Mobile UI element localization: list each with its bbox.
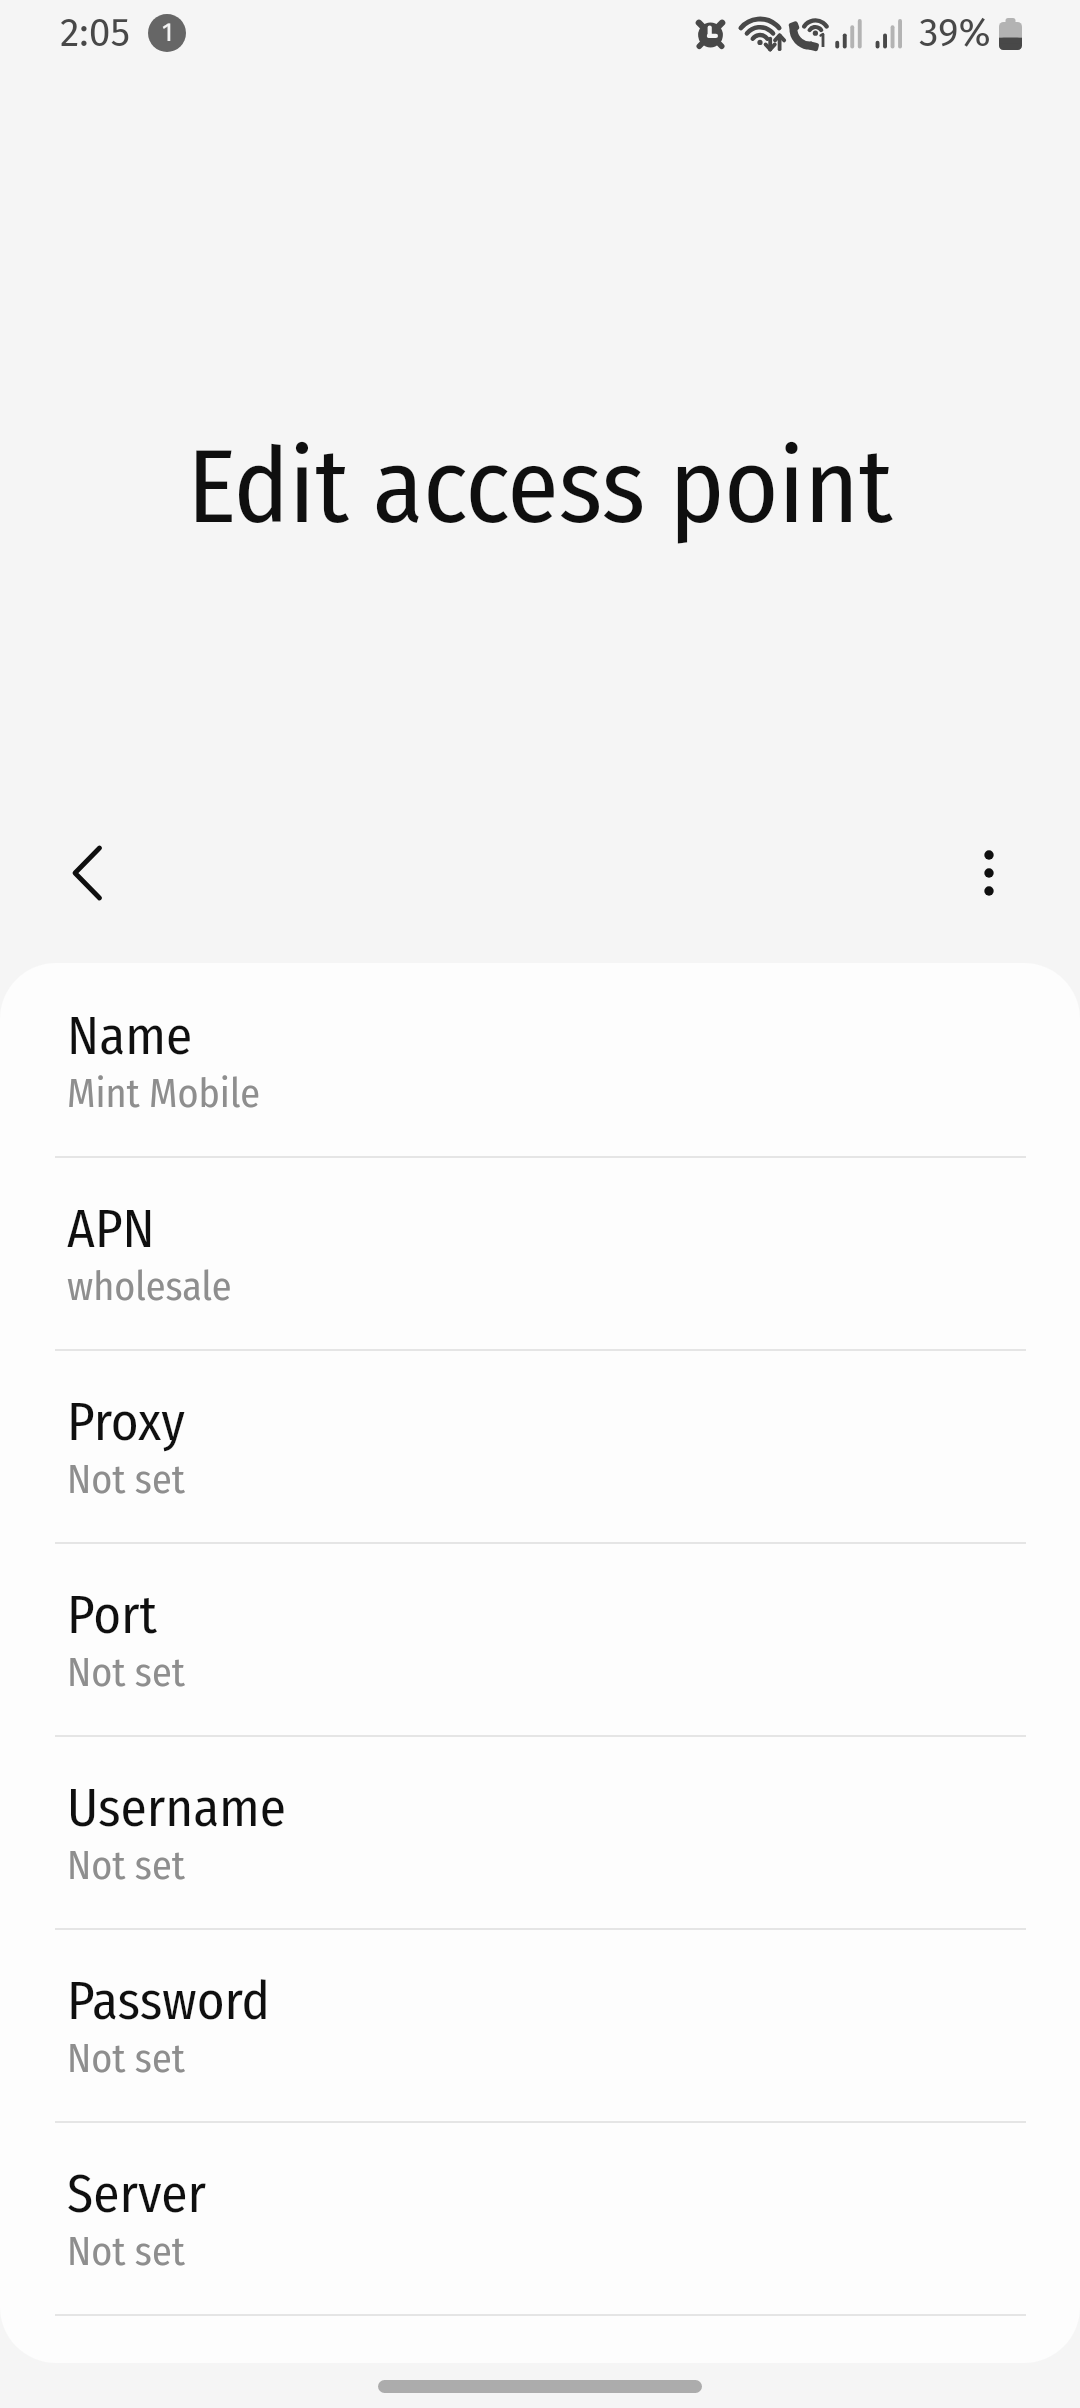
staticText: Not set	[67, 1842, 185, 1890]
staticText: Not set	[67, 2228, 185, 2276]
staticText: Password	[67, 1969, 270, 2033]
staticText: Mint Mobile	[67, 1070, 261, 1118]
staticText: Server	[67, 2162, 207, 2226]
button[interactable]: Password	[0, 1930, 1080, 2123]
staticText: Username	[67, 1776, 287, 1840]
button[interactable]: APN	[0, 1158, 1080, 1351]
button[interactable]: Port	[0, 1544, 1080, 1737]
staticText: Name	[67, 1004, 193, 1068]
staticText: 1	[162, 18, 173, 48]
staticText: 2:05	[60, 10, 130, 57]
button[interactable]: Server	[0, 2123, 1080, 2316]
staticText: Edit access point	[0, 426, 1080, 550]
staticText: Not set	[67, 1456, 185, 1504]
staticText: Proxy	[67, 1390, 185, 1454]
button[interactable]: Navigate up	[17, 803, 157, 943]
staticText: Not set	[67, 1649, 185, 1697]
staticText: wholesale	[67, 1263, 232, 1311]
staticText: Not set	[67, 2035, 185, 2083]
button[interactable]: Username	[0, 1737, 1080, 1930]
staticText: Port	[67, 1583, 157, 1647]
button[interactable]: More options	[919, 803, 1059, 943]
button[interactable]: Proxy	[0, 1351, 1080, 1544]
button[interactable]: Name	[0, 963, 1080, 1158]
staticText: 39%	[919, 10, 991, 57]
staticText: APN	[67, 1197, 155, 1261]
